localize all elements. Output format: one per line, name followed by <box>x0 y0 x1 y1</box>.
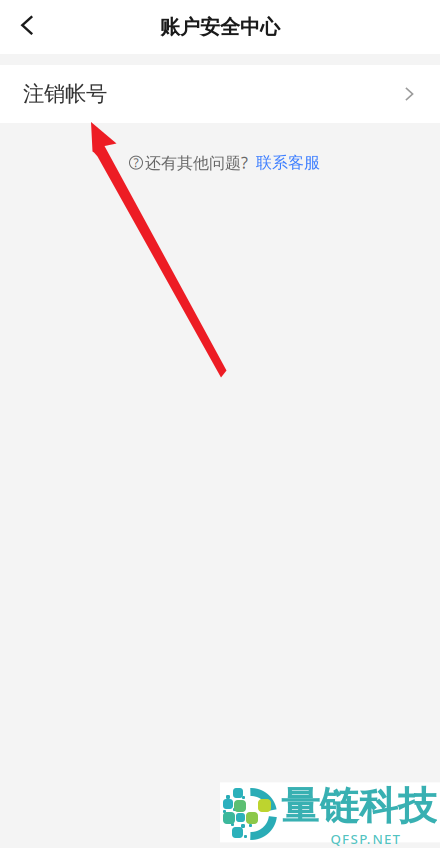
staticText: 联系客服 <box>256 153 320 172</box>
button[interactable]: 联系客服 <box>248 153 320 172</box>
staticText: 注销帐号 <box>23 81 107 107</box>
staticText: 还有其他问题? <box>145 152 248 173</box>
staticText: 量链科技 <box>281 782 437 830</box>
staticText: 账户安全中心 <box>160 15 280 39</box>
staticText: ? <box>133 155 138 171</box>
staticText: QFSP.NET <box>330 830 400 848</box>
button[interactable]: Back <box>0 0 56 54</box>
button[interactable]: 注销帐号 <box>0 65 440 123</box>
